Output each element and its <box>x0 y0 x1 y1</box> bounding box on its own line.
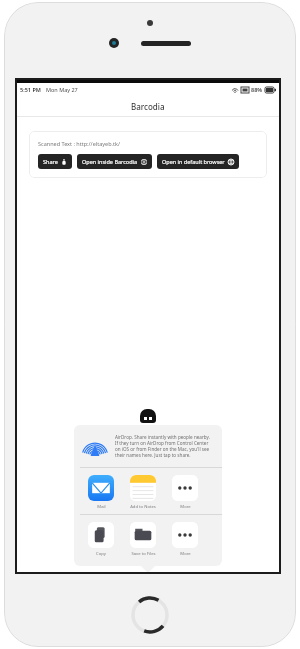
button[interactable]: Home <box>130 595 170 635</box>
staticText: More <box>180 551 191 557</box>
button[interactable]: Copy <box>80 522 122 557</box>
staticText: Copy <box>96 551 106 557</box>
staticText: AirDrop. Share instantly with people nea… <box>115 434 214 458</box>
button[interactable]: Save to Files <box>122 522 164 557</box>
button[interactable]: Add to Notes <box>122 475 164 510</box>
button[interactable]: Share <box>38 154 72 169</box>
button[interactable]: AirDrop. Share instantly with people nea… <box>74 425 222 467</box>
button[interactable]: More <box>164 522 206 557</box>
button[interactable]: Open inside Barcodia <box>77 154 152 169</box>
button[interactable]: Mail <box>80 475 122 510</box>
staticText: Save to Files <box>131 551 156 557</box>
staticText: Scanned Text : http://eltayeb.tk/ <box>38 140 120 147</box>
staticText: 88% <box>251 86 263 93</box>
staticText: Open inside Barcodia <box>82 158 138 165</box>
staticText: Mon May 27 <box>46 86 78 93</box>
staticText: More <box>180 504 191 510</box>
button[interactable]: More <box>164 475 206 510</box>
staticText: 5:51 PM <box>20 86 41 93</box>
staticText: Barcodia <box>131 101 165 112</box>
button[interactable]: Open in default browser <box>157 154 239 169</box>
staticText: Add to Notes <box>130 504 156 510</box>
staticText: Open in default browser <box>162 158 225 165</box>
staticText: Mail <box>97 504 106 510</box>
staticText: Share <box>43 158 58 165</box>
